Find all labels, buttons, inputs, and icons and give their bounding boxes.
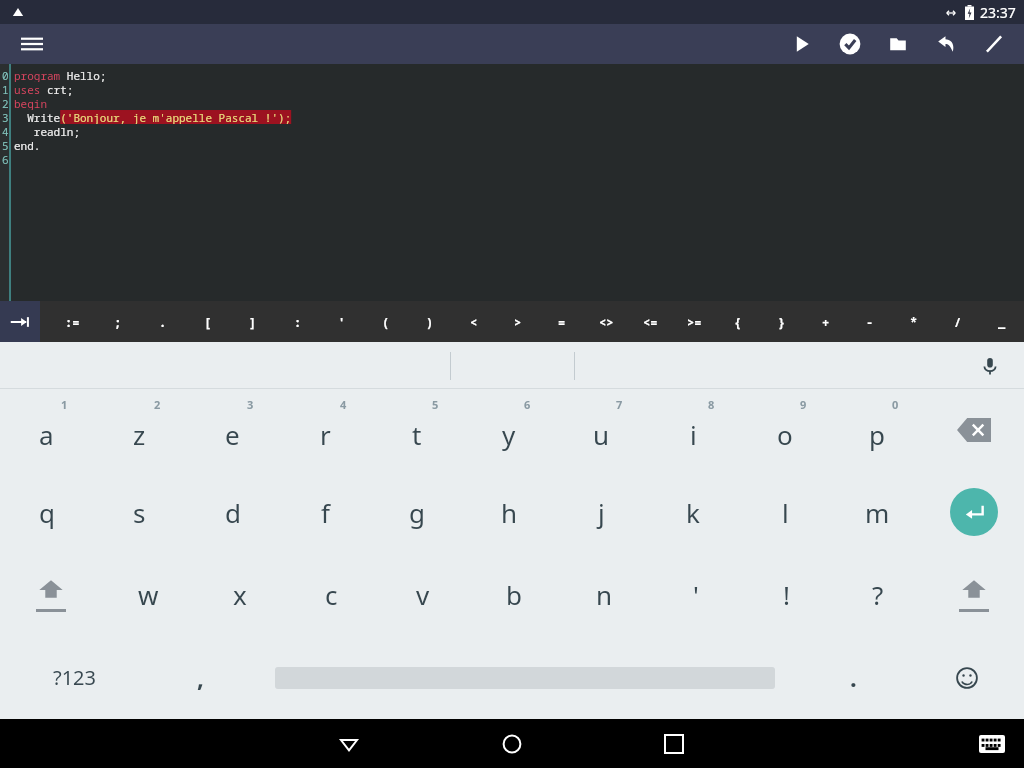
button[interactable]: 3 [186, 389, 279, 471]
button[interactable]: 4 [279, 389, 371, 471]
button[interactable]: } [760, 301, 804, 342]
staticText: uses crt; [14, 82, 74, 96]
staticText: j [598, 495, 605, 530]
button[interactable]: <> [584, 301, 628, 342]
button[interactable]: Switch keyboard [970, 722, 1014, 766]
button[interactable]: 9 [739, 389, 831, 471]
staticText: end. [14, 138, 41, 152]
button[interactable]: * [892, 301, 936, 342]
button[interactable]: j [555, 471, 647, 553]
button[interactable]: ?123 [0, 636, 148, 719]
button[interactable]: + [804, 301, 848, 342]
button[interactable]: - [848, 301, 892, 342]
staticText: k [686, 495, 700, 530]
button[interactable]: >= [672, 301, 716, 342]
button[interactable]: 5 [371, 389, 463, 471]
button[interactable]: Tab [0, 301, 40, 342]
button[interactable]: Voice input [970, 346, 1010, 386]
staticText: ] [249, 314, 257, 330]
button[interactable]: s [93, 471, 186, 553]
staticText: readln; [14, 124, 80, 138]
button[interactable]: h [463, 471, 555, 553]
staticText: c [325, 577, 338, 612]
button[interactable]: l [739, 471, 831, 553]
button[interactable]: ? [832, 553, 923, 636]
button[interactable]: , [148, 636, 253, 719]
button[interactable]: Open file [874, 24, 922, 64]
button[interactable]: Enter [923, 471, 1024, 553]
button[interactable]: . [140, 301, 185, 342]
button[interactable]: d [186, 471, 279, 553]
staticText: begin [14, 96, 47, 110]
staticText: v [416, 577, 430, 612]
staticText: : [294, 314, 302, 330]
button[interactable]: Home [488, 720, 536, 768]
button[interactable]: x [194, 553, 286, 636]
button[interactable]: q [0, 471, 93, 553]
button[interactable]: ' [320, 301, 364, 342]
staticText: < [470, 314, 478, 330]
staticText: y [502, 417, 516, 452]
staticText: , [197, 661, 204, 694]
button[interactable]: > [496, 301, 540, 342]
staticText: 2 [2, 96, 9, 110]
staticText: 2 [154, 397, 161, 412]
button[interactable]: Menu [12, 24, 52, 64]
button[interactable]: : [275, 301, 320, 342]
staticText: 4 [2, 124, 9, 138]
button[interactable]: Edit [970, 24, 1018, 64]
button[interactable]: w [102, 553, 194, 636]
staticText: m [865, 495, 890, 530]
staticText: 1 [2, 82, 9, 96]
staticText: >= [687, 314, 702, 330]
button[interactable]: 1 [0, 389, 93, 471]
staticText: f [321, 495, 330, 530]
staticText: b [506, 577, 522, 612]
button[interactable]: Emoji [910, 636, 1024, 719]
button[interactable]: < [452, 301, 496, 342]
button[interactable]: { [716, 301, 760, 342]
button[interactable]: Recent apps [650, 720, 698, 768]
button[interactable]: / [936, 301, 980, 342]
button[interactable]: [ [185, 301, 230, 342]
staticText: 3 [247, 397, 254, 412]
button[interactable]: Back [325, 720, 373, 768]
staticText: u [593, 417, 610, 452]
button[interactable]: . [796, 636, 910, 719]
staticText: = [558, 314, 566, 330]
button[interactable]: Check [826, 24, 874, 64]
button[interactable]: 0 [831, 389, 923, 471]
button[interactable]: v [377, 553, 468, 636]
button[interactable]: 8 [647, 389, 739, 471]
button[interactable]: 7 [555, 389, 647, 471]
button[interactable]: ) [408, 301, 452, 342]
button[interactable]: f [279, 471, 371, 553]
button[interactable]: _ [980, 301, 1024, 342]
button[interactable]: Run [778, 24, 826, 64]
staticText: r [320, 417, 331, 452]
button[interactable]: Undo [922, 24, 970, 64]
button[interactable]: = [540, 301, 584, 342]
staticText: i [690, 417, 697, 452]
staticText: ' [693, 577, 699, 612]
button[interactable]: Shift [923, 553, 1024, 636]
staticText: [ [204, 314, 212, 330]
button[interactable]: ( [364, 301, 408, 342]
button[interactable]: <= [628, 301, 672, 342]
button[interactable]: 6 [463, 389, 555, 471]
button[interactable]: 2 [93, 389, 186, 471]
button[interactable]: b [468, 553, 559, 636]
button[interactable]: k [647, 471, 739, 553]
button[interactable]: Space [253, 636, 796, 719]
button[interactable]: Backspace [923, 389, 1024, 471]
button[interactable]: ' [650, 553, 741, 636]
button[interactable]: g [371, 471, 463, 553]
button[interactable]: := [50, 301, 95, 342]
button[interactable]: Shift [0, 553, 102, 636]
button[interactable]: ] [230, 301, 275, 342]
button[interactable]: ; [95, 301, 140, 342]
button[interactable]: ! [741, 553, 832, 636]
button[interactable]: m [831, 471, 923, 553]
button[interactable]: n [559, 553, 650, 636]
button[interactable]: c [286, 553, 377, 636]
